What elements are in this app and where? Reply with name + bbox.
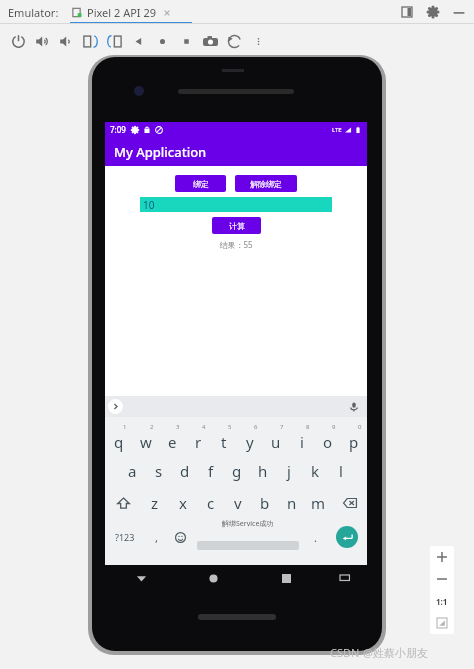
button[interactable]: a bbox=[119, 455, 146, 487]
button[interactable]: Power bbox=[6, 29, 30, 53]
button[interactable]: Volume up bbox=[30, 29, 54, 53]
button[interactable]: Hide keyboard bbox=[323, 565, 367, 591]
button[interactable]: Expand suggestions bbox=[108, 399, 123, 414]
staticText: 0 bbox=[358, 423, 362, 431]
button[interactable]: Shift bbox=[105, 487, 141, 519]
staticText: 解除绑定 bbox=[250, 179, 282, 189]
staticText: . bbox=[314, 530, 317, 545]
button[interactable]: k bbox=[302, 455, 328, 487]
button[interactable]: Back bbox=[105, 565, 177, 591]
staticText: x bbox=[179, 493, 187, 513]
button[interactable]: 9 bbox=[315, 423, 341, 455]
button[interactable]: 6 bbox=[237, 423, 263, 455]
button[interactable]: z bbox=[141, 487, 169, 519]
staticText: 7:09 bbox=[110, 124, 126, 135]
button[interactable]: Dock bbox=[398, 3, 416, 21]
button[interactable]: 1 bbox=[105, 423, 132, 455]
button[interactable]: 4 bbox=[185, 423, 211, 455]
button[interactable]: . bbox=[303, 519, 327, 555]
button[interactable]: Recents bbox=[250, 565, 323, 591]
button[interactable]: c bbox=[197, 487, 224, 519]
button[interactable]: 绑定 bbox=[175, 175, 226, 192]
button[interactable]: b bbox=[251, 487, 278, 519]
staticText: g bbox=[232, 461, 242, 481]
button[interactable]: f bbox=[198, 455, 224, 487]
staticText: o bbox=[323, 432, 333, 452]
button[interactable]: Enter bbox=[327, 519, 367, 555]
button[interactable]: Zoom in bbox=[430, 546, 454, 568]
button[interactable]: Zoom out bbox=[430, 568, 454, 590]
staticText: z bbox=[151, 493, 159, 513]
button[interactable]: 2 bbox=[132, 423, 159, 455]
staticText: l bbox=[339, 461, 343, 481]
button[interactable]: 7 bbox=[263, 423, 289, 455]
staticText: 1:1 bbox=[436, 596, 448, 607]
staticText: j bbox=[287, 461, 291, 481]
button[interactable]: Close tab bbox=[162, 8, 172, 18]
button[interactable]: x bbox=[169, 487, 197, 519]
button[interactable]: 8 bbox=[289, 423, 315, 455]
button[interactable]: Volume down bbox=[54, 29, 78, 53]
button[interactable]: v bbox=[224, 487, 251, 519]
button[interactable]: Backspace bbox=[332, 487, 367, 519]
button[interactable]: 解除绑定 bbox=[235, 175, 297, 192]
staticText: 计算 bbox=[229, 221, 245, 231]
staticText: n bbox=[287, 493, 297, 513]
staticText: Emulator: bbox=[8, 5, 59, 20]
button[interactable]: Space bbox=[192, 519, 303, 555]
staticText: t bbox=[221, 432, 227, 452]
staticText: h bbox=[258, 461, 268, 481]
staticText: e bbox=[168, 432, 177, 452]
staticText: 5 bbox=[228, 423, 232, 431]
button[interactable]: h bbox=[250, 455, 276, 487]
button[interactable]: Screenshot bbox=[198, 29, 222, 53]
staticText: 6 bbox=[254, 423, 258, 431]
button[interactable]: Overview bbox=[174, 29, 198, 53]
button[interactable]: Back bbox=[126, 29, 150, 53]
button[interactable]: Settings bbox=[424, 3, 442, 21]
button[interactable]: 0 bbox=[341, 423, 367, 455]
button[interactable]: ?123 bbox=[105, 519, 144, 555]
button[interactable]: Fit to window bbox=[430, 612, 454, 634]
staticText: , bbox=[155, 530, 158, 545]
button[interactable]: Emoji bbox=[168, 519, 192, 555]
button[interactable]: l bbox=[328, 455, 354, 487]
staticText: b bbox=[260, 493, 270, 513]
staticText: v bbox=[234, 493, 242, 513]
staticText: p bbox=[349, 432, 359, 452]
button[interactable]: Home bbox=[150, 29, 174, 53]
staticText: 4 bbox=[202, 423, 206, 431]
button[interactable]: j bbox=[276, 455, 302, 487]
staticText: 1 bbox=[123, 423, 127, 431]
button[interactable]: 5 bbox=[211, 423, 237, 455]
button[interactable]: Voice input bbox=[347, 400, 361, 414]
button[interactable]: History bbox=[222, 29, 246, 53]
button[interactable]: 3 bbox=[159, 423, 185, 455]
button[interactable]: Rotate left bbox=[78, 29, 102, 53]
button[interactable]: Minimize bbox=[450, 3, 468, 21]
button[interactable]: m bbox=[305, 487, 332, 519]
staticText: r bbox=[195, 432, 202, 452]
button[interactable]: s bbox=[146, 455, 172, 487]
button[interactable]: n bbox=[278, 487, 305, 519]
staticText: My Application bbox=[114, 143, 207, 161]
staticText: y bbox=[246, 432, 254, 452]
button[interactable]: More bbox=[246, 29, 270, 53]
staticText: 2 bbox=[150, 423, 154, 431]
button[interactable]: 10 bbox=[140, 197, 332, 212]
staticText: 9 bbox=[332, 423, 336, 431]
staticText: w bbox=[140, 432, 152, 452]
button[interactable]: 计算 bbox=[212, 217, 261, 234]
staticText: @姓蔡小朋友 bbox=[363, 645, 428, 660]
button[interactable]: Rotate right bbox=[102, 29, 126, 53]
button[interactable]: g bbox=[224, 455, 250, 487]
button[interactable]: , bbox=[144, 519, 168, 555]
button[interactable]: 1:1 bbox=[430, 590, 454, 612]
staticText: ?123 bbox=[115, 531, 135, 543]
staticText: CSDN bbox=[330, 645, 363, 660]
button[interactable]: Home bbox=[177, 565, 250, 591]
button[interactable]: My Application bbox=[105, 137, 367, 166]
staticText: s bbox=[155, 461, 163, 481]
staticText: 7 bbox=[280, 423, 284, 431]
button[interactable]: d bbox=[172, 455, 198, 487]
